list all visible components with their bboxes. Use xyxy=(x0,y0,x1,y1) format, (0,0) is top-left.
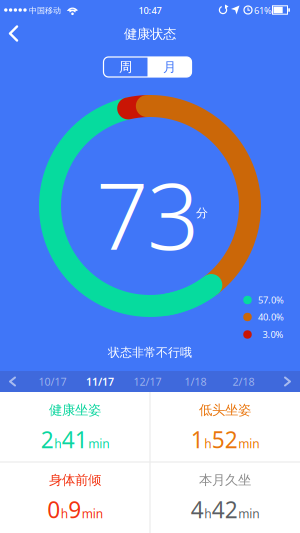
staticText: 1 xyxy=(191,424,204,454)
button[interactable]: 2/18 xyxy=(222,371,264,392)
staticText: 9 xyxy=(68,494,81,524)
button[interactable] xyxy=(5,373,21,389)
staticText: min xyxy=(88,436,109,452)
staticText: 健康状态 xyxy=(124,26,176,42)
staticText: 1/18 xyxy=(184,374,206,389)
staticText: 42 xyxy=(212,494,238,524)
staticText: 10:47 xyxy=(138,4,161,17)
staticText: 41 xyxy=(62,424,88,454)
staticText: 61% xyxy=(254,4,272,17)
button[interactable]: 11/17 xyxy=(79,371,121,392)
button[interactable] xyxy=(5,23,23,43)
staticText: 月 xyxy=(163,59,176,75)
staticText: h xyxy=(61,506,68,522)
staticText: 57.0% xyxy=(258,294,284,306)
staticText: 10/17 xyxy=(38,374,66,389)
button[interactable]: 月 xyxy=(147,57,191,77)
staticText: 2/18 xyxy=(232,374,254,389)
staticText: 身体前倾 xyxy=(49,472,101,488)
staticText: min xyxy=(238,506,259,522)
staticText: 本月久坐 xyxy=(199,472,251,488)
staticText: min xyxy=(238,436,259,452)
staticText: 0 xyxy=(47,494,60,524)
staticText: 状态非常不行哦 xyxy=(108,345,192,360)
staticText: h xyxy=(204,506,211,522)
button[interactable]: 身体前倾 xyxy=(0,462,150,532)
staticText: 健康坐姿 xyxy=(49,402,101,418)
button[interactable]: 10/17 xyxy=(31,371,73,392)
button[interactable]: 健康坐姿 xyxy=(0,392,150,462)
button[interactable]: 12/17 xyxy=(126,371,168,392)
staticText: 12/17 xyxy=(133,374,161,389)
staticText: 73 xyxy=(96,153,200,275)
button[interactable] xyxy=(279,373,295,389)
button[interactable]: 本月久坐 xyxy=(150,462,300,532)
staticText: min xyxy=(82,506,103,522)
staticText: 2 xyxy=(41,424,54,454)
button[interactable]: 低头坐姿 xyxy=(150,392,300,462)
staticText: h xyxy=(54,436,61,452)
staticText: 周 xyxy=(119,59,132,75)
staticText: h xyxy=(204,436,211,452)
staticText: 分 xyxy=(196,206,208,220)
staticText: 中国移动 xyxy=(29,6,61,15)
staticText: 低头坐姿 xyxy=(199,402,251,418)
staticText: 4 xyxy=(191,494,204,524)
staticText: 11/17 xyxy=(86,374,114,389)
button[interactable]: 1/18 xyxy=(174,371,216,392)
staticText: 3.0% xyxy=(262,328,283,341)
button[interactable]: 周 xyxy=(103,57,147,77)
staticText: 52 xyxy=(212,424,238,454)
staticText: 40.0% xyxy=(258,311,284,323)
